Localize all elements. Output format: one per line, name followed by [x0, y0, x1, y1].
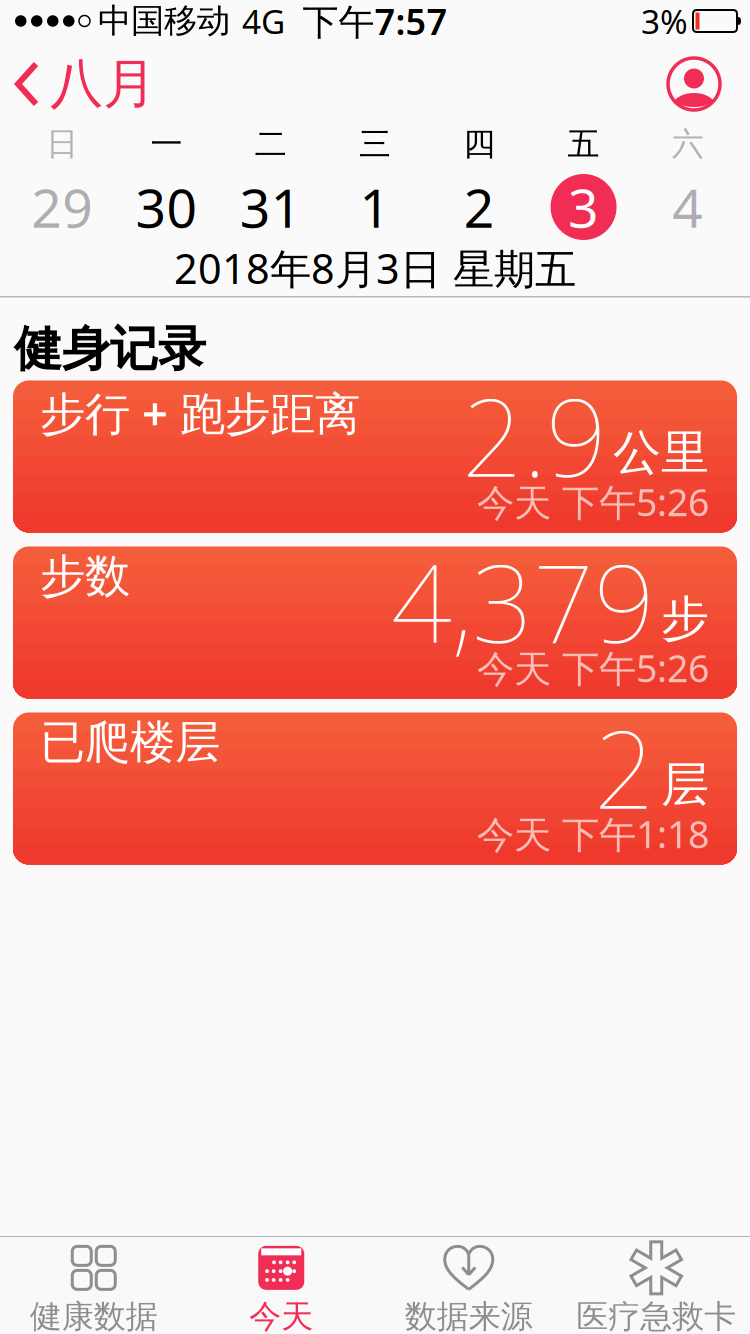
staticText: 健身记录: [14, 319, 206, 378]
staticText: 日: [46, 124, 78, 164]
staticText: 步数: [40, 548, 130, 604]
staticText: 五: [568, 124, 600, 164]
staticText: 步行 + 跑步距离: [40, 382, 360, 443]
staticText: 今天: [249, 1297, 313, 1334]
staticText: 六: [672, 124, 704, 164]
staticText: 2018年8月3日 星期五: [174, 241, 576, 295]
staticText: 医疗急救卡: [576, 1297, 736, 1334]
staticText: 4G: [242, 0, 285, 43]
button[interactable]: 健康数据: [0, 1235, 187, 1334]
button[interactable]: 3: [531, 172, 636, 242]
button[interactable]: 30: [114, 172, 219, 242]
staticText: 数据来源: [405, 1297, 533, 1334]
button[interactable]: 29: [10, 172, 114, 242]
staticText: 步: [661, 589, 709, 648]
staticText: 今天 下午5:26: [477, 643, 709, 692]
staticText: 4,379: [391, 530, 655, 672]
button[interactable]: 4: [636, 172, 740, 242]
button[interactable]: [668, 58, 750, 110]
staticText: 层: [661, 755, 709, 814]
staticText: 四: [463, 124, 495, 164]
button[interactable]: 今天: [187, 1235, 375, 1334]
staticText: 健康数据: [30, 1297, 158, 1334]
button[interactable]: 2: [427, 172, 531, 242]
button[interactable]: 已爬楼层: [13, 712, 737, 864]
staticText: 2: [594, 696, 655, 838]
staticText: 2: [464, 172, 495, 242]
button[interactable]: 医疗急救卡: [562, 1235, 750, 1334]
staticText: 1: [359, 172, 390, 242]
staticText: 一: [150, 124, 182, 164]
staticText: 今天 下午1:18: [477, 809, 709, 858]
staticText: 今天 下午5:26: [477, 477, 709, 526]
button[interactable]: 步数: [13, 546, 737, 698]
staticText: 29: [31, 172, 93, 242]
staticText: 3%: [641, 0, 688, 43]
staticText: 中国移动: [98, 0, 230, 41]
staticText: 八月: [50, 51, 156, 117]
button[interactable]: 步行 + 跑步距离: [13, 380, 737, 532]
staticText: 三: [359, 124, 391, 164]
button[interactable]: 1: [323, 172, 427, 242]
staticText: 30: [135, 172, 197, 242]
staticText: 二: [255, 124, 287, 164]
staticText: 已爬楼层: [40, 714, 220, 770]
button[interactable]: 31: [219, 172, 323, 242]
staticText: 4: [672, 172, 703, 242]
staticText: 3: [568, 172, 599, 242]
staticText: 下午7:57: [302, 0, 447, 45]
button[interactable]: 数据来源: [375, 1235, 562, 1334]
staticText: 公里: [613, 423, 709, 482]
button[interactable]: 八月: [0, 51, 156, 117]
staticText: 31: [240, 172, 302, 242]
staticText: 2.9: [462, 364, 607, 506]
